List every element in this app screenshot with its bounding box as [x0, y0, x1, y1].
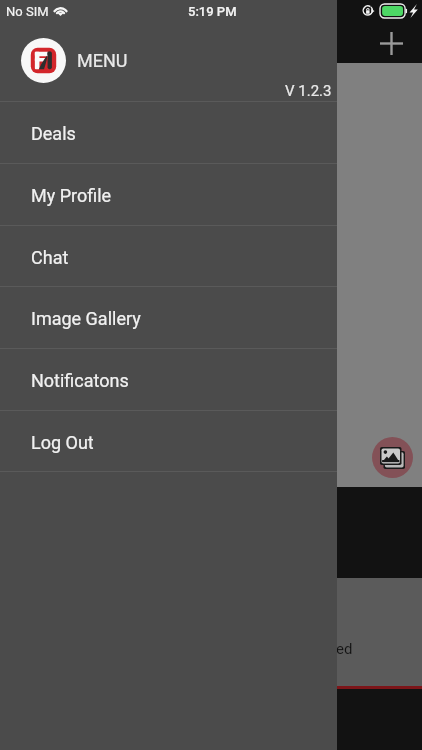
button[interactable]: Image Gallery	[0, 287, 337, 348]
staticText: V 1.2.3	[285, 82, 332, 100]
staticText: Deals	[31, 123, 76, 144]
staticText: Log Out	[31, 432, 94, 453]
staticText: 5:19 PM	[188, 4, 237, 19]
button[interactable]: Gallery	[372, 437, 413, 478]
staticText: My Profile	[31, 185, 112, 206]
button[interactable]: Deals	[0, 102, 337, 163]
button[interactable]: Notificatons	[0, 349, 337, 410]
staticText: MENU	[77, 50, 128, 71]
staticText: Image Gallery	[31, 308, 141, 329]
staticText: Chat	[31, 247, 69, 268]
button[interactable]: My Profile	[0, 164, 337, 225]
staticText: No SIM	[6, 4, 49, 19]
button[interactable]: Add	[373, 25, 410, 62]
button[interactable]: Chat	[0, 226, 337, 286]
staticText: shared	[307, 640, 353, 658]
staticText: Notificatons	[31, 370, 129, 391]
button[interactable]: Log Out	[0, 411, 337, 471]
